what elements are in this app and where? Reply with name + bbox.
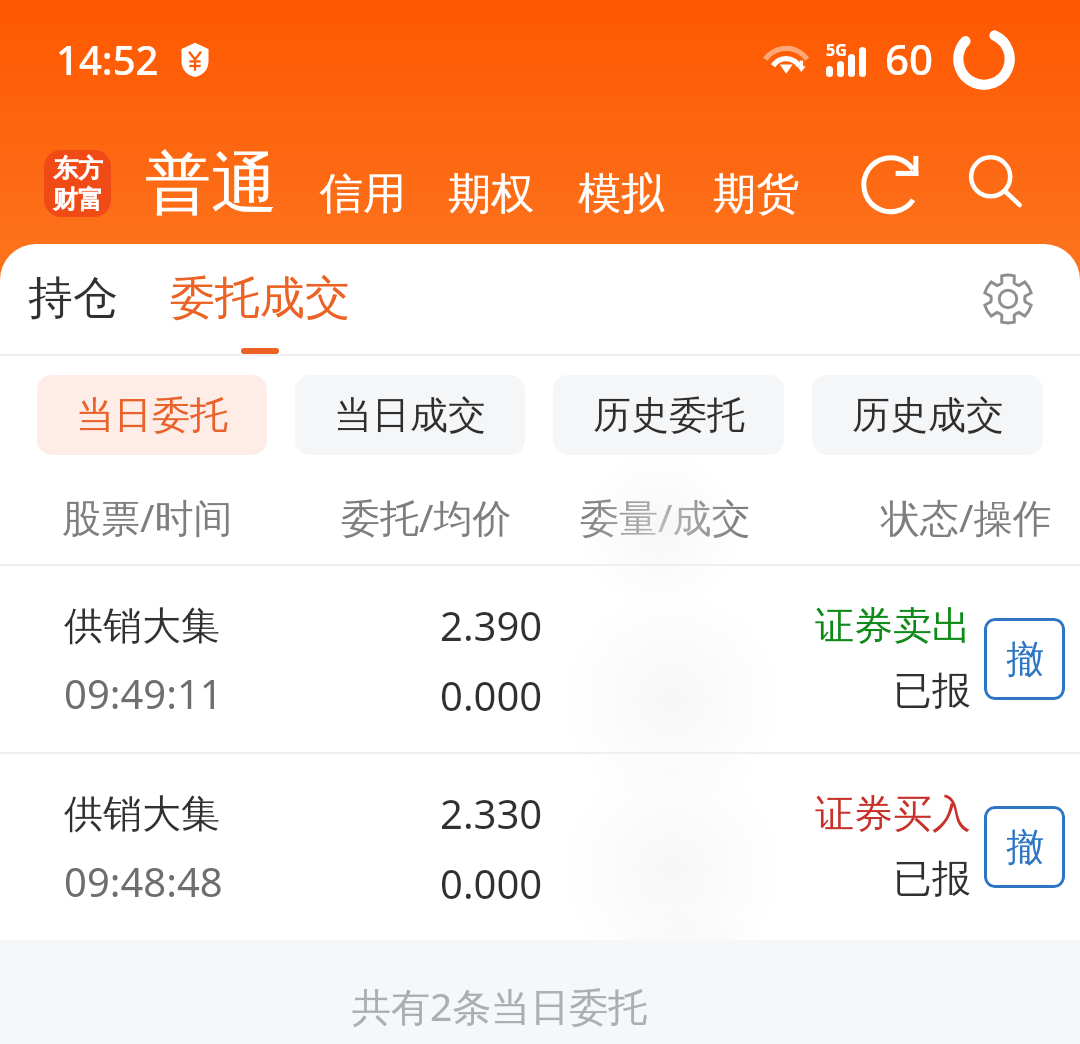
button[interactable]: 历史委托 — [553, 375, 784, 455]
staticText: 2.330 — [440, 786, 543, 840]
staticText: 0.000 — [440, 668, 543, 722]
staticText: 状态/操作 — [881, 490, 1052, 543]
staticText: 60 — [885, 30, 934, 87]
button[interactable]: 普通 — [145, 142, 277, 225]
button[interactable]: 期货 — [713, 167, 799, 221]
button[interactable]: 当日委托 — [37, 375, 267, 455]
staticText: 委托成交 — [170, 270, 350, 327]
staticText: 供销大集 — [64, 601, 220, 650]
button[interactable]: 历史成交 — [812, 375, 1043, 455]
staticText: 历史委托 — [593, 391, 745, 439]
staticText: 09:49:11 — [64, 666, 223, 720]
staticText: 东方 — [53, 153, 103, 184]
staticText: 已报 — [893, 666, 971, 715]
staticText: 2.390 — [440, 598, 543, 652]
staticText: 普通 — [145, 142, 277, 225]
button[interactable]: Search — [955, 143, 1035, 223]
staticText: 期货 — [713, 167, 799, 221]
button[interactable]: Refresh — [852, 143, 932, 223]
staticText: 期权 — [448, 167, 534, 221]
button[interactable]: East Money — [44, 150, 111, 217]
button[interactable]: 供销大集 — [0, 754, 1080, 940]
button[interactable]: 撤 — [984, 806, 1065, 888]
staticText: 证券买入 — [815, 789, 971, 838]
staticText: 09:48:48 — [64, 854, 223, 908]
staticText: 模拟 — [578, 167, 664, 221]
staticText: 委量/成交 — [580, 490, 751, 543]
staticText: 持仓 — [28, 270, 118, 327]
staticText: 14:52 — [56, 32, 159, 86]
staticText: 证券卖出 — [815, 601, 971, 650]
button[interactable]: 持仓 — [6, 254, 140, 343]
button[interactable]: 当日成交 — [295, 375, 525, 455]
staticText: 当日成交 — [334, 391, 486, 439]
staticText: 0.000 — [440, 856, 543, 910]
staticText: 撤 — [1006, 635, 1044, 683]
staticText: 5G — [826, 39, 847, 61]
staticText: 委托/均价 — [341, 490, 512, 543]
button[interactable]: 委托成交 — [150, 254, 370, 354]
staticText: 股票/时间 — [62, 490, 233, 543]
staticText: 财富 — [53, 184, 103, 215]
button[interactable]: 撤 — [984, 618, 1065, 700]
staticText: 已报 — [893, 854, 971, 903]
staticText: 当日委托 — [76, 391, 228, 439]
staticText: 信用 — [320, 167, 406, 221]
button[interactable]: 模拟 — [578, 167, 664, 221]
staticText: 共有2条当日委托 — [352, 979, 648, 1032]
button[interactable]: 信用 — [320, 167, 406, 221]
button[interactable]: Settings — [969, 260, 1047, 338]
staticText: 供销大集 — [64, 789, 220, 838]
button[interactable]: 供销大集 — [0, 566, 1080, 752]
staticText: 历史成交 — [852, 391, 1004, 439]
staticText: 撤 — [1006, 823, 1044, 871]
button[interactable]: 期权 — [448, 167, 534, 221]
